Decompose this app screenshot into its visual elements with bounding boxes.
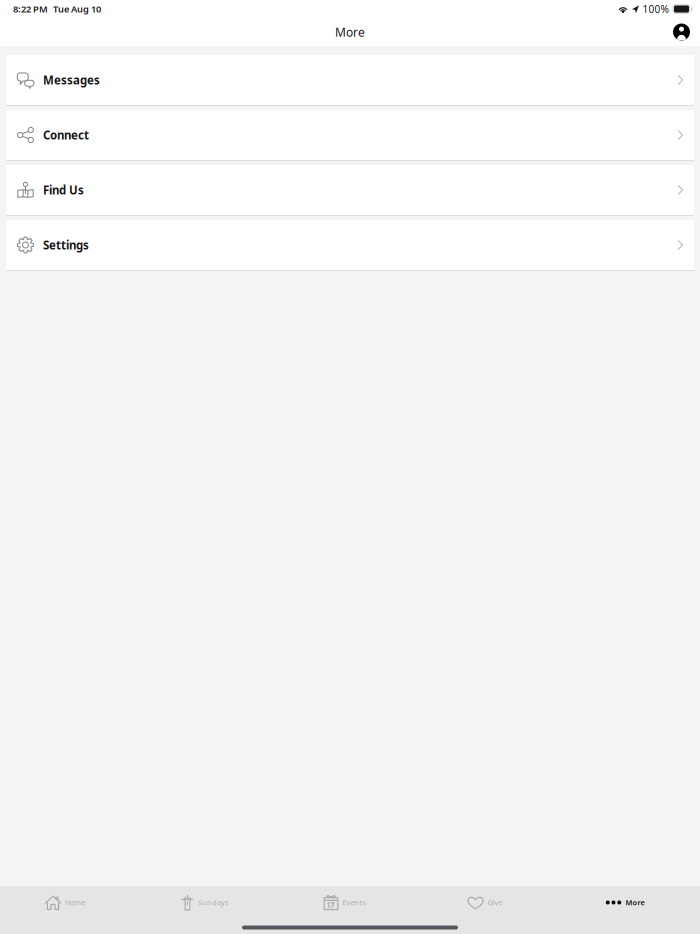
staticText: Events xyxy=(342,897,366,907)
staticText: More xyxy=(625,897,644,907)
button[interactable]: Sundays xyxy=(140,887,280,917)
staticText: Sundays xyxy=(198,897,229,907)
staticText: Tue Aug 10 xyxy=(53,3,101,15)
staticText: Settings xyxy=(43,237,89,253)
staticText: Messages xyxy=(43,72,100,88)
button[interactable]: Home xyxy=(0,887,140,917)
button[interactable]: Messages xyxy=(6,55,694,105)
staticText: 100% xyxy=(642,2,668,16)
staticText: Home xyxy=(65,897,85,907)
staticText: 8:22 PM xyxy=(13,3,48,15)
staticText: Give xyxy=(487,897,502,907)
button[interactable]: Account xyxy=(667,17,696,46)
button[interactable]: Connect xyxy=(6,110,694,160)
staticText: More xyxy=(335,24,365,40)
staticText: Find Us xyxy=(43,182,84,198)
button[interactable]: Settings xyxy=(6,220,694,270)
staticText: Connect xyxy=(43,127,89,143)
button[interactable]: More xyxy=(560,887,700,917)
button[interactable]: Give xyxy=(420,887,560,917)
button[interactable]: Find Us xyxy=(6,165,694,215)
button[interactable]: Events xyxy=(280,887,420,917)
